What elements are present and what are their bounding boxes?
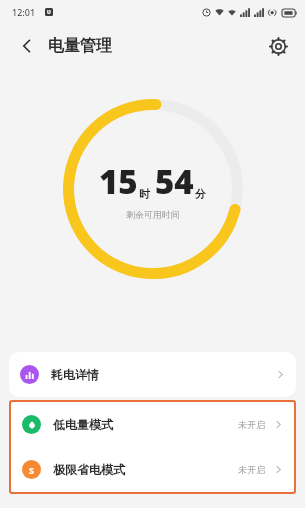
staticText: 未开启	[238, 464, 265, 475]
staticText: 12:01	[12, 6, 36, 18]
staticText: 极限省电模式	[53, 462, 125, 477]
staticText: 15	[99, 159, 138, 204]
staticText: 剩余可用时间	[126, 209, 180, 220]
staticText: S	[29, 464, 34, 476]
staticText: 分	[195, 187, 206, 201]
staticText: 未开启	[238, 419, 265, 430]
staticText: 54	[155, 159, 194, 204]
button[interactable]: Back	[10, 29, 44, 63]
staticText: U	[47, 9, 51, 16]
button[interactable]: Settings	[261, 29, 295, 63]
staticText: 电量管理	[48, 36, 112, 56]
button[interactable]: S	[11, 447, 294, 492]
staticText: 时	[139, 187, 150, 201]
staticText: 耗电详情	[51, 367, 99, 382]
button[interactable]: 耗电详情	[9, 352, 296, 397]
staticText: 低电量模式	[53, 417, 113, 432]
button[interactable]: 低电量模式	[11, 402, 294, 447]
